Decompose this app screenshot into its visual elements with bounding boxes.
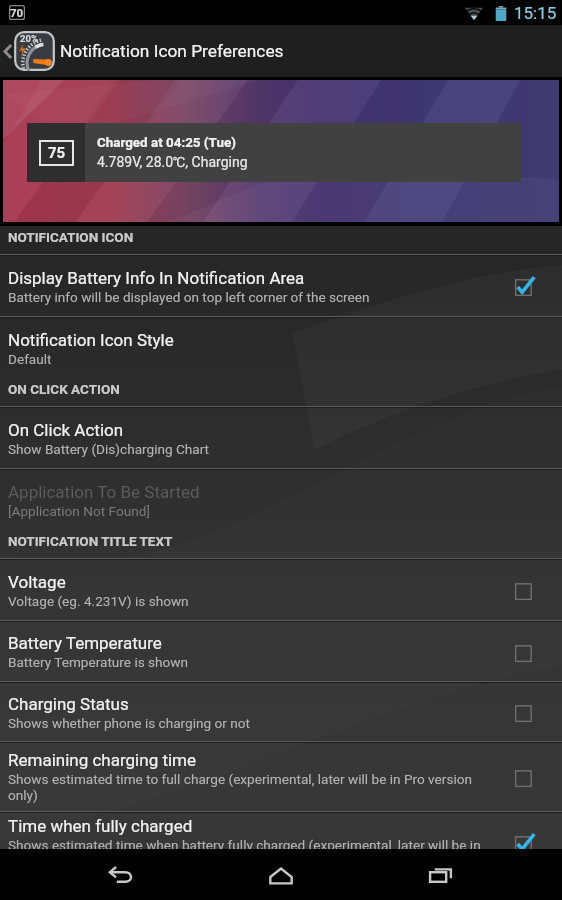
staticText: ON CLICK ACTION xyxy=(8,381,120,397)
staticText: Battery Temperature is shown xyxy=(8,654,189,670)
staticText: Shows estimated time to full charge (exp… xyxy=(8,771,486,804)
button[interactable]: Display Battery Info In Notification Are… xyxy=(0,256,562,316)
staticText: Time when fully charged xyxy=(8,816,193,836)
staticText: [Application Not Found] xyxy=(8,503,150,519)
staticText: Shows whether phone is charging or not xyxy=(8,715,250,731)
staticText: Voltage (eg. 4.231V) is shown xyxy=(8,593,189,609)
staticText: 4.789V, 28.0℃, Charging xyxy=(97,154,248,170)
button[interactable]: Charging Status xyxy=(0,683,562,741)
button[interactable]: On Click Action xyxy=(0,408,562,468)
staticText: Notification Icon Preferences xyxy=(60,41,284,61)
staticText: Charging Status xyxy=(8,694,129,714)
staticText: Battery Temperature xyxy=(8,633,162,653)
staticText: Show Battery (Dis)charging Chart xyxy=(8,441,210,457)
button[interactable]: Time when fully charged xyxy=(0,813,562,873)
staticText: On Click Action xyxy=(8,420,124,440)
staticText: 70 xyxy=(10,6,24,19)
staticText: Battery info will be displayed on top le… xyxy=(8,289,370,305)
staticText: 20% xyxy=(20,33,38,44)
staticText: NOTIFICATION ICON xyxy=(8,229,134,245)
staticText: Charged at 04:25 (Tue) xyxy=(97,135,236,151)
staticText: 75 xyxy=(48,144,66,162)
button[interactable]: Voltage xyxy=(0,560,562,620)
button[interactable]: Back xyxy=(82,849,160,900)
button[interactable]: Battery Temperature xyxy=(0,622,562,681)
button[interactable]: Recent apps xyxy=(402,849,480,900)
staticText: 15:15 xyxy=(514,3,557,23)
button[interactable]: Home xyxy=(242,849,320,900)
button[interactable]: Application To Be Started xyxy=(0,470,562,530)
staticText: Remaining charging time xyxy=(8,750,197,770)
staticText: Display Battery Info In Notification Are… xyxy=(8,268,305,288)
button[interactable]: Notification Icon Style xyxy=(0,318,562,378)
staticText: Shows estimated time when battery fully … xyxy=(8,837,486,870)
button[interactable]: Remaining charging time xyxy=(0,743,562,811)
staticText: NOTIFICATION TITLE TEXT xyxy=(8,533,173,549)
staticText: Default xyxy=(8,351,52,367)
staticText: Notification Icon Style xyxy=(8,330,174,350)
staticText: Application To Be Started xyxy=(8,482,200,502)
staticText: Voltage xyxy=(8,572,66,592)
